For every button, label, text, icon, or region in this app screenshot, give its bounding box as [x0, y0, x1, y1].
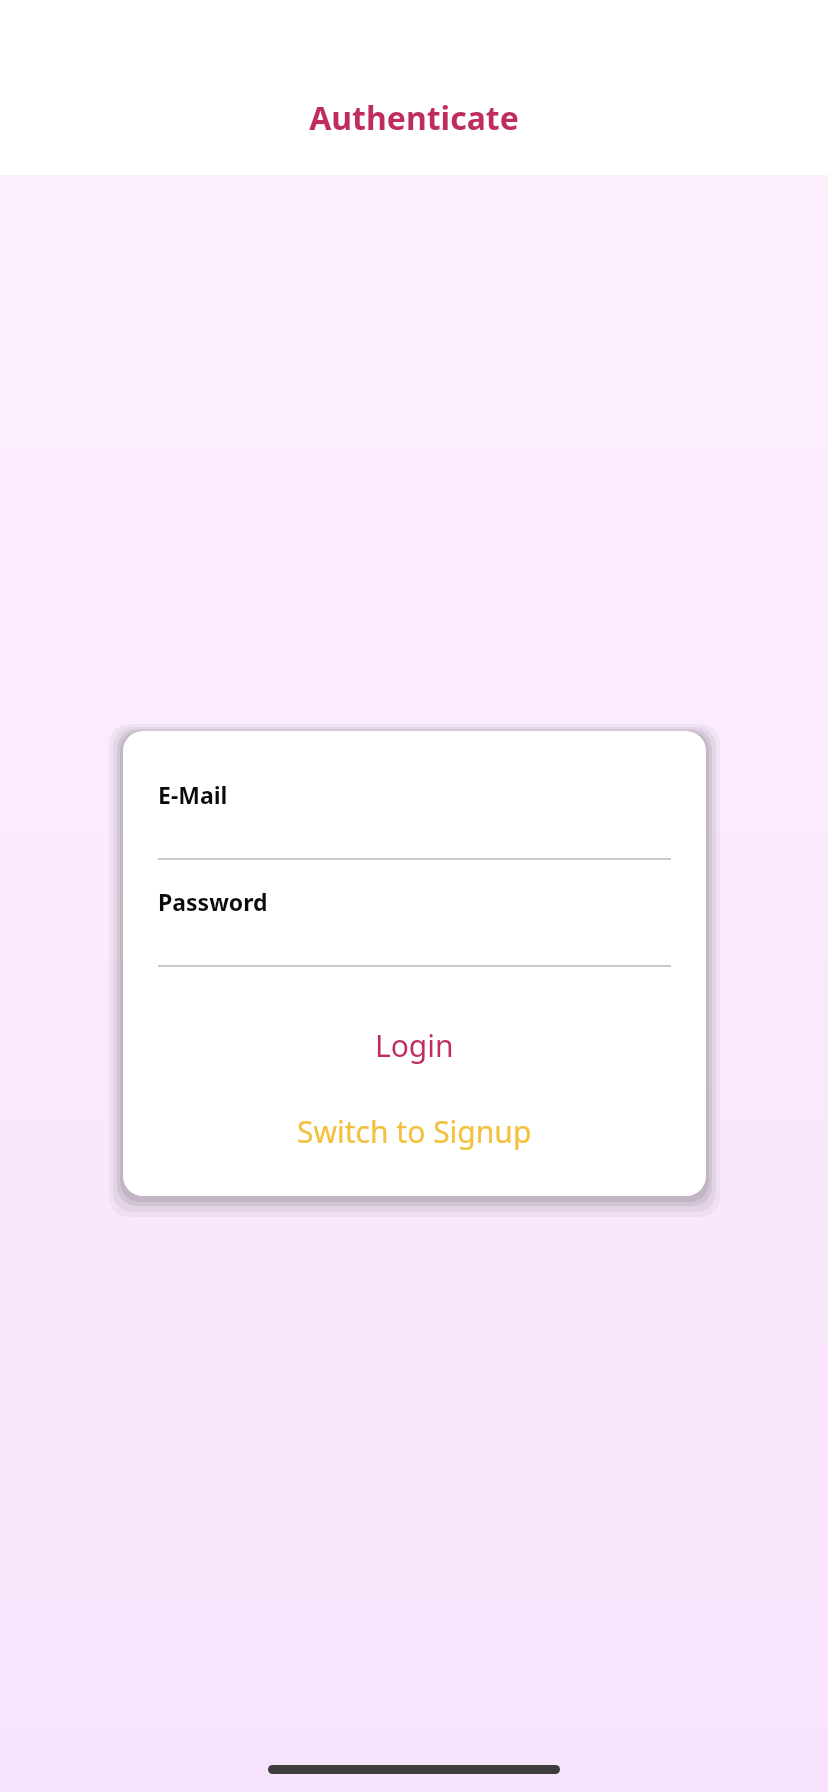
button[interactable]: Password	[158, 886, 671, 993]
staticText: E-Mail	[158, 779, 228, 810]
staticText: Login	[375, 1025, 454, 1066]
staticText: Password	[158, 886, 268, 917]
button[interactable]: Switch to Signup	[158, 1101, 671, 1162]
staticText: Switch to Signup	[297, 1111, 532, 1152]
button[interactable]: E-Mail	[158, 779, 671, 886]
staticText: Authenticate	[0, 96, 828, 140]
button[interactable]: Login	[158, 1015, 671, 1076]
